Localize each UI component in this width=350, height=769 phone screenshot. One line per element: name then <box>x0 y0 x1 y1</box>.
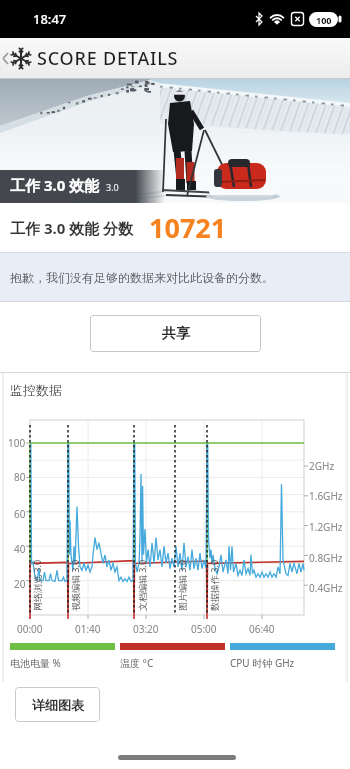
staticText: 工作 3.0 效能 分数 <box>10 218 134 238</box>
staticText: 共享 <box>162 325 190 343</box>
staticText: 100 <box>8 436 26 450</box>
staticText: 20 <box>14 577 26 591</box>
staticText: 0.8GHz <box>309 551 343 565</box>
staticText: 图片编辑 3.0 <box>176 559 188 611</box>
button[interactable]: 工作 3.0 效能 <box>0 79 350 203</box>
staticText: 1.6GHz <box>309 489 343 503</box>
staticText: 05:00 <box>191 622 217 636</box>
staticText: 文档编辑 3.0 <box>136 559 148 611</box>
staticText: 100 <box>316 14 332 26</box>
staticText: 监控数据 <box>10 382 62 398</box>
staticText: 视频编辑 3.0 <box>69 559 81 611</box>
button[interactable]: 共享 <box>90 315 261 352</box>
staticText: 03:20 <box>133 622 159 636</box>
staticText: 10721 <box>149 209 227 246</box>
staticText: 0.4GHz <box>309 581 343 595</box>
button[interactable]: 详细图表 <box>15 687 100 722</box>
staticText: 电池电量 % <box>10 656 61 670</box>
staticText: CPU 时钟 GHz <box>230 656 295 670</box>
staticText: 工作 3.0 效能 <box>10 175 100 195</box>
staticText: 1.2GHz <box>309 520 343 534</box>
staticText: 网络浏览 3.0 <box>31 559 43 611</box>
staticText: 数据操作 3.0 <box>208 559 220 611</box>
staticText: 详细图表 <box>32 697 84 713</box>
staticText: 抱歉，我们没有足够的数据来对比此设备的分数。 <box>10 270 274 285</box>
staticText: 40 <box>14 542 26 556</box>
staticText: 18:47 <box>33 10 67 28</box>
staticText: 06:40 <box>249 622 275 636</box>
staticText: 00:00 <box>17 622 43 636</box>
staticText: 2GHz <box>309 459 335 473</box>
staticText: SCORE DETAILS <box>37 46 179 71</box>
staticText: 温度 °C <box>120 656 154 670</box>
staticText: 3.0 <box>106 181 119 193</box>
button[interactable]: SCORE DETAILS <box>0 38 350 79</box>
staticText: 60 <box>14 507 26 521</box>
staticText: 80 <box>14 470 26 484</box>
staticText: 01:40 <box>75 622 101 636</box>
